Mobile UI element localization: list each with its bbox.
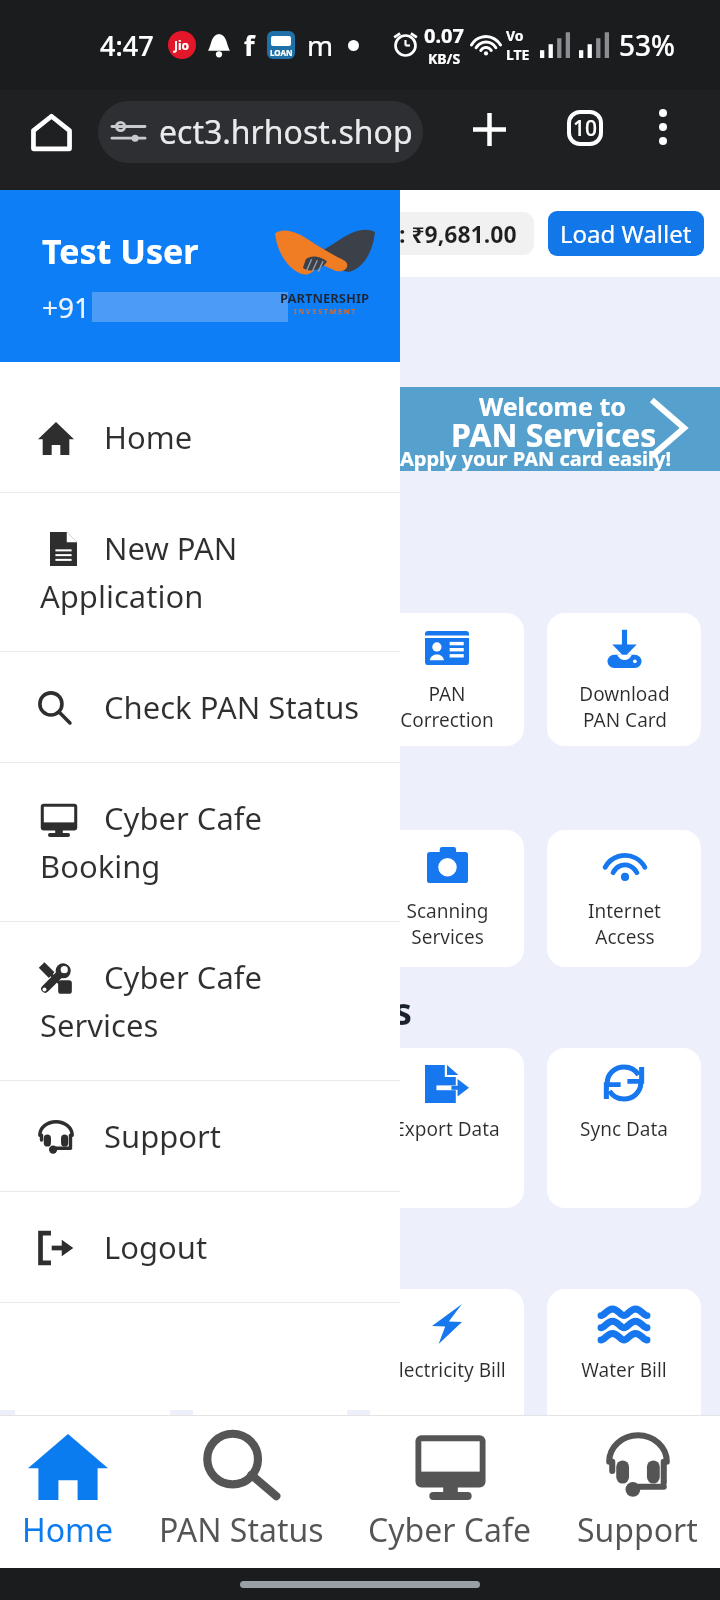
staticText: Export Data: [394, 1116, 500, 1142]
staticText: Services: [40, 1004, 159, 1046]
button[interactable]: Tabs: [559, 102, 611, 154]
staticText: Home: [22, 1508, 114, 1552]
staticText: ect3.hrhost.shop: [159, 110, 413, 154]
staticText: Electricity Bill: [388, 1357, 506, 1383]
staticText: Load Wallet: [560, 217, 692, 250]
staticText: Services: [411, 924, 484, 950]
button[interactable]: More options: [639, 103, 687, 151]
staticText: Download: [579, 681, 670, 707]
staticText: 10: [573, 114, 598, 143]
button[interactable]: New tab: [461, 101, 517, 157]
staticText: Check PAN Status: [104, 686, 360, 728]
staticText: 0.07: [424, 22, 464, 49]
staticText: Track: [246, 681, 294, 707]
staticText: Print: [72, 1116, 115, 1142]
button[interactable]: Import: [193, 1048, 347, 1208]
staticText: Correction: [400, 707, 494, 733]
button[interactable]: Electricity Bill: [370, 1289, 524, 1449]
staticText: Application: [40, 575, 204, 617]
button[interactable]: New: [15, 613, 170, 746]
button[interactable]: New PAN: [0, 493, 400, 651]
staticText: New PAN: [104, 527, 238, 569]
button[interactable]: Check PAN Status: [0, 652, 400, 762]
button[interactable]: Load Wallet: [548, 211, 704, 256]
staticText: PAN Card: [583, 707, 667, 733]
staticText: +91: [42, 288, 91, 326]
button[interactable]: Scanning: [370, 830, 524, 967]
staticText: Cyber Cafe: [104, 956, 262, 998]
staticText: Test User: [42, 228, 199, 274]
staticText: PAN Services: [451, 413, 657, 457]
button[interactable]: Support: [577, 1416, 698, 1568]
staticText: PAN Status: [159, 1508, 324, 1552]
staticText: Support: [104, 1115, 222, 1157]
button[interactable]: Download: [547, 613, 701, 746]
staticText: Water Bill: [581, 1357, 667, 1383]
staticText: Welcome to: [479, 389, 626, 423]
staticText: Support: [577, 1508, 698, 1552]
staticText: LTE: [506, 45, 530, 64]
button[interactable]: Cyber Cafe: [0, 922, 400, 1080]
button[interactable]: ect3.hrhost.shop: [98, 101, 423, 163]
staticText: LOAN: [270, 47, 293, 58]
staticText: Vo: [506, 26, 524, 45]
staticText: Cyber Cafe: [104, 797, 262, 839]
button[interactable]: PAN: [370, 613, 524, 746]
staticText: PARTNERSHIP: [280, 289, 370, 307]
staticText: 4:47: [100, 27, 154, 64]
staticText: Printing: [57, 898, 129, 924]
button[interactable]: Home: [0, 382, 400, 492]
button[interactable]: Home: [22, 103, 80, 161]
staticText: f: [244, 27, 255, 64]
staticText: Internet: [588, 898, 661, 924]
staticText: m: [307, 26, 334, 64]
button[interactable]: Photo: [193, 830, 347, 967]
button[interactable]: Internet: [547, 830, 701, 967]
staticText: Queue: [63, 1142, 123, 1168]
button[interactable]: Home: [22, 1416, 114, 1568]
button[interactable]: Water Bill: [547, 1289, 701, 1449]
button[interactable]: Export Data: [370, 1048, 524, 1208]
button[interactable]: Logout: [0, 1192, 400, 1302]
staticText: New: [73, 681, 113, 707]
staticText: PAN: [428, 681, 466, 707]
staticText: I N V E S T M E N T: [294, 307, 356, 317]
staticText: Apply your PAN card easily!: [400, 445, 672, 472]
button[interactable]: DTH: [193, 1289, 347, 1449]
button[interactable]: Mobile: [15, 1289, 170, 1449]
button[interactable]: Printing: [15, 830, 170, 967]
staticText: Cyber Cafe: [368, 1508, 532, 1552]
staticText: Home: [104, 416, 193, 458]
staticText: Status: [242, 707, 298, 733]
button[interactable]: PAN Status: [159, 1416, 324, 1568]
staticText: Wallet: ₹9,681.00: [326, 218, 517, 249]
staticText: Booking: [40, 845, 161, 887]
button[interactable]: Sync Data: [547, 1048, 701, 1208]
staticText: Scanning: [406, 898, 489, 924]
button[interactable]: Cyber Cafe: [0, 763, 400, 921]
staticText: KB/S: [428, 49, 461, 68]
staticText: Cyber Cafe Services: [0, 985, 412, 1035]
staticText: PAN: [74, 707, 112, 733]
button[interactable]: Cyber Cafe: [368, 1416, 532, 1568]
staticText: Photo: [243, 898, 297, 924]
button[interactable]: Support: [0, 1081, 400, 1191]
staticText: Logout: [104, 1226, 208, 1268]
button[interactable]: Print: [15, 1048, 170, 1208]
staticText: Jio: [174, 37, 190, 53]
staticText: 53%: [619, 26, 675, 64]
button[interactable]: Track: [193, 613, 347, 746]
staticText: Sync Data: [580, 1116, 668, 1142]
staticText: Access: [595, 924, 655, 950]
